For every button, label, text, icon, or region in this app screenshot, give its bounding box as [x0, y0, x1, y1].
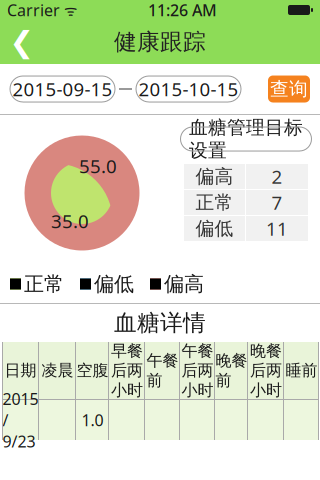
staticText: 早餐 后两 小时	[111, 341, 143, 400]
staticText: 11	[266, 216, 288, 241]
staticText: 偏低	[195, 217, 233, 240]
staticText: Carrier	[7, 0, 60, 21]
staticText: 健康跟踪	[114, 28, 206, 56]
staticText: 凌晨	[41, 361, 73, 380]
staticText: ❮	[9, 25, 34, 59]
staticText: 偏低	[94, 272, 134, 296]
button[interactable]: Back	[0, 20, 44, 64]
staticText: 查询	[270, 77, 308, 100]
staticText: 2015-09-15	[12, 77, 112, 101]
staticText: 晚餐 后两 小时	[250, 341, 282, 400]
staticText: 2	[271, 164, 282, 189]
staticText: 2015/ 9/23	[2, 388, 38, 452]
staticText: 空腹	[76, 361, 108, 380]
staticText: 11:26 AM	[148, 0, 217, 21]
staticText: 7	[271, 190, 282, 215]
staticText: 血糖详情	[114, 309, 206, 337]
staticText: 55.0	[79, 154, 117, 178]
staticText: 血糖管理目标设置	[189, 116, 303, 162]
staticText: 正常	[195, 191, 233, 214]
staticText: 1.0	[81, 409, 103, 431]
staticText: 35.0	[51, 209, 89, 233]
button[interactable]: 查询	[268, 75, 310, 102]
button[interactable]: 血糖管理目标设置	[180, 127, 311, 151]
staticText: 晚餐 前	[215, 351, 247, 390]
staticText: 偏高	[164, 272, 204, 296]
staticText: 午餐 前	[146, 351, 178, 390]
staticText: 正常	[24, 272, 64, 296]
staticText: 午餐 后两 小时	[181, 341, 213, 400]
staticText: 睡前	[285, 361, 317, 380]
button[interactable]: 2015-10-15	[136, 76, 241, 102]
button[interactable]: 2015-09-15	[10, 76, 115, 102]
staticText: 日期	[4, 361, 36, 380]
staticText: 2015-10-15	[138, 77, 238, 101]
staticText: ᯤ	[60, 0, 77, 20]
staticText: 偏高	[195, 165, 233, 188]
